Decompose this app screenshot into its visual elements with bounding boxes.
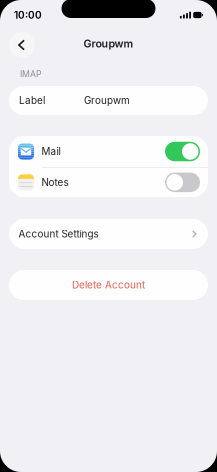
staticText: 10:00 [14, 9, 42, 21]
button[interactable]: Back [9, 32, 35, 58]
button[interactable]: Account Settings [9, 219, 208, 249]
staticText: Notes [41, 176, 68, 188]
staticText: Groupwm [83, 37, 133, 50]
staticText: Mail [41, 145, 60, 157]
staticText: Label [19, 94, 45, 106]
staticText: Groupwm [84, 94, 130, 106]
button[interactable]: Delete Account [9, 270, 208, 300]
button[interactable]: Notes [9, 168, 208, 197]
button[interactable]: Mail [9, 136, 208, 167]
staticText: Account Settings [18, 228, 98, 240]
staticText: Delete Account [72, 279, 145, 291]
staticText: IMAP [20, 69, 42, 79]
